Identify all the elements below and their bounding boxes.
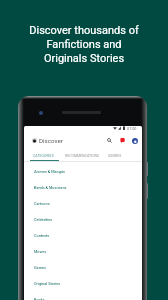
staticText: Original Stories [34,281,61,285]
staticText: Celebrities [34,217,53,221]
staticText: Games [34,265,46,269]
button[interactable]: Cartoons [24,195,142,211]
button[interactable]: GENRES [105,151,125,161]
button[interactable]: Movies [24,243,142,259]
button[interactable]: Contests [24,227,142,243]
staticText: RECOMMENDATIONS [65,154,100,158]
button[interactable]: Games [24,259,142,275]
staticText: CATEGORIES [33,154,54,158]
staticText: Discover thousands of Fanfictions and Or… [29,24,139,65]
staticText: 07:00 [127,126,137,130]
other: App logo [32,138,37,143]
button[interactable]: Animes & Mangás [24,163,142,179]
staticText: Discover [39,137,63,144]
staticText: GENRES [108,154,122,158]
staticText: Movies [34,249,47,253]
staticText: Animes & Mangás [34,169,65,173]
staticText: Books [34,297,45,300]
button[interactable]: Bands & Musicians [24,179,142,195]
button[interactable]: Celebrities [24,211,142,227]
button[interactable]: RECOMMENDATIONS [64,151,101,161]
button[interactable]: Profile [130,136,139,145]
button[interactable]: Original Stories [24,275,142,291]
staticText: Contests [34,233,50,237]
staticText: Bands & Musicians [34,185,67,189]
button[interactable]: Books [24,291,142,300]
button[interactable]: Search [105,136,114,145]
button[interactable]: Notifications [118,136,127,145]
staticText: Cartoons [34,201,50,205]
button[interactable]: CATEGORIES [27,151,60,161]
